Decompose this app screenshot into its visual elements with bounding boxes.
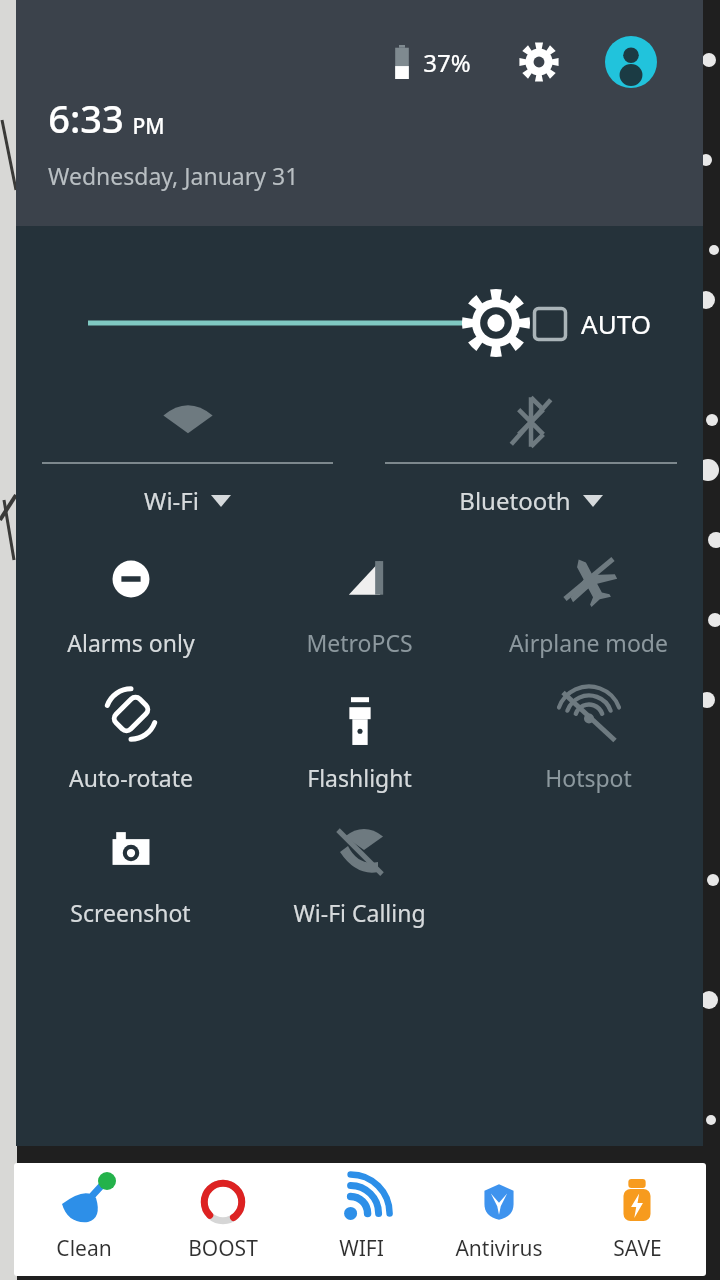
button[interactable]: Clean (14, 1163, 153, 1276)
staticText: Bluetooth (459, 484, 571, 517)
button[interactable]: WIFI (292, 1163, 430, 1276)
button[interactable]: Airplane mode (474, 551, 703, 658)
staticText: AUTO (581, 306, 651, 341)
staticText: Flashlight (307, 762, 412, 793)
button[interactable]: Wi-Fi (16, 394, 359, 517)
staticText: Alarms only (67, 627, 195, 658)
button[interactable]: User account (605, 36, 657, 88)
staticText: Wi-Fi Calling (293, 897, 426, 928)
staticText: Wednesday, January 31 (48, 160, 299, 191)
staticText: Clean (56, 1234, 112, 1263)
button[interactable]: BOOST (153, 1163, 292, 1276)
staticText: Screenshot (70, 897, 191, 928)
staticText: Airplane mode (509, 627, 668, 658)
button[interactable]: MetroPCS (245, 551, 474, 658)
staticText: Antivirus (455, 1234, 543, 1263)
button[interactable]: Wi-Fi Calling (245, 821, 474, 928)
button[interactable]: Alarms only (16, 551, 245, 658)
staticText: BOOST (188, 1234, 258, 1263)
button[interactable]: Auto-rotate (16, 686, 245, 793)
staticText: 37% (423, 46, 471, 79)
button[interactable]: Antivirus (430, 1163, 568, 1276)
button[interactable]: Settings (513, 36, 565, 88)
button[interactable]: Screenshot (16, 821, 245, 928)
button[interactable]: Hotspot (474, 686, 703, 793)
staticText: WIFI (339, 1234, 384, 1263)
staticText: MetroPCS (306, 627, 413, 658)
button[interactable]: AUTO (533, 306, 651, 341)
staticText: Auto-rotate (69, 762, 193, 793)
staticText: SAVE (613, 1234, 662, 1263)
button[interactable]: Flashlight (245, 686, 474, 793)
button[interactable]: Bluetooth (359, 394, 703, 517)
staticText: Wi-Fi (144, 484, 199, 517)
button[interactable]: AUTO (16, 294, 703, 352)
staticText: 6:33 (48, 92, 124, 144)
button[interactable]: SAVE (568, 1163, 706, 1276)
staticText: PM (132, 112, 165, 141)
staticText: Hotspot (545, 762, 632, 793)
